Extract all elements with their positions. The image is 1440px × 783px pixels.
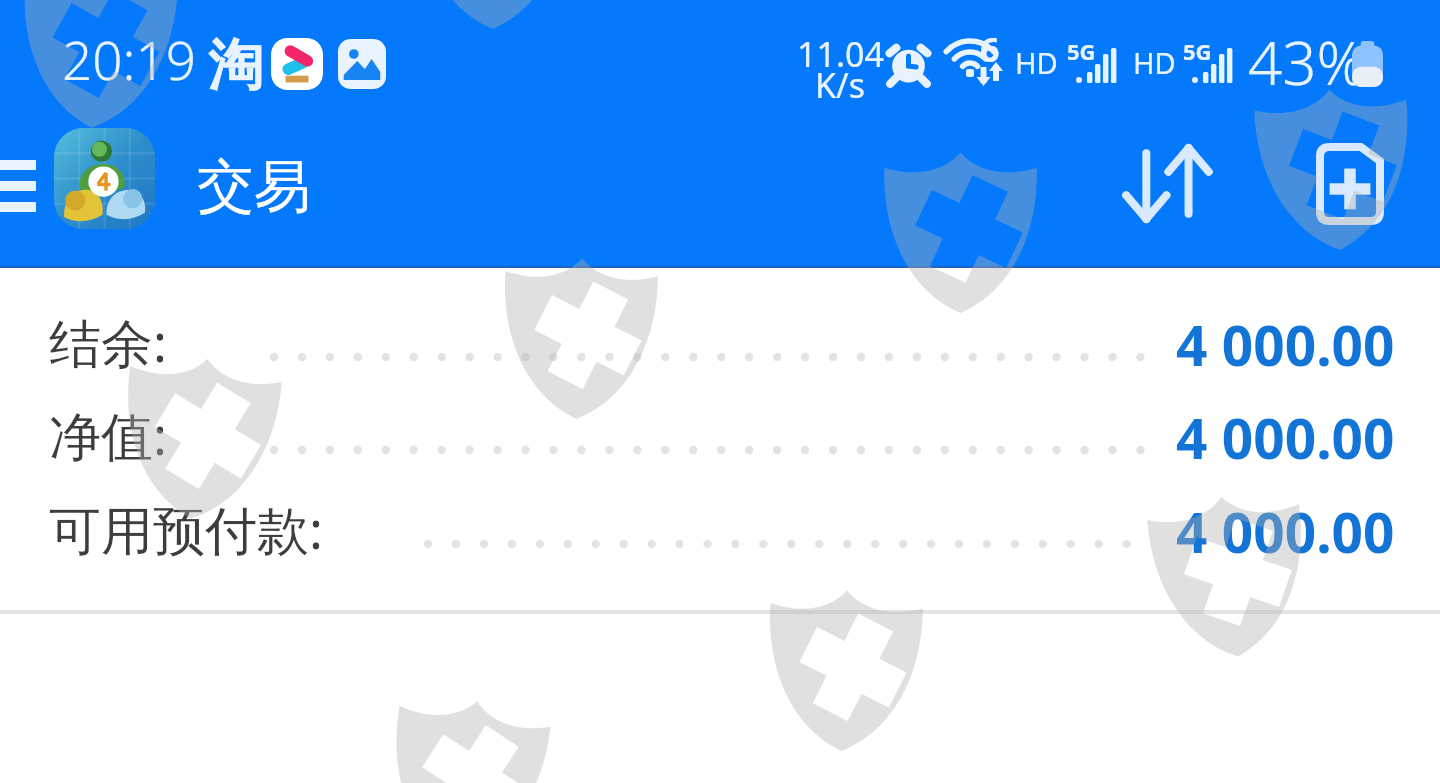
button[interactable]: Sort (1093, 120, 1241, 247)
staticText: 20:19 (62, 23, 196, 95)
staticText: 净值: (49, 399, 167, 470)
staticText: K/s (815, 62, 865, 108)
button[interactable]: 结余: (49, 306, 167, 377)
staticText: 5G (1183, 36, 1212, 66)
staticText: 4 000.00 (1176, 400, 1395, 475)
staticText: 6 (980, 26, 1000, 72)
staticText: HD (1133, 43, 1176, 82)
staticText: 淘 (208, 31, 263, 100)
staticText: 11.04 (797, 31, 884, 77)
staticText: 4 000.00 (1176, 307, 1395, 382)
staticText: 4 000.00 (1176, 494, 1395, 569)
staticText: HD (1015, 43, 1058, 82)
staticText: 交易 (197, 151, 311, 223)
staticText: 43% (1248, 21, 1366, 103)
button[interactable]: New order (1283, 120, 1417, 247)
button[interactable]: Menu (0, 142, 52, 230)
button[interactable]: 净值: (49, 399, 167, 470)
staticText: 可用预付款: (49, 493, 323, 564)
button[interactable]: 可用预付款: (49, 493, 323, 564)
staticText: 结余: (49, 306, 167, 377)
staticText: 5G (1067, 36, 1096, 66)
